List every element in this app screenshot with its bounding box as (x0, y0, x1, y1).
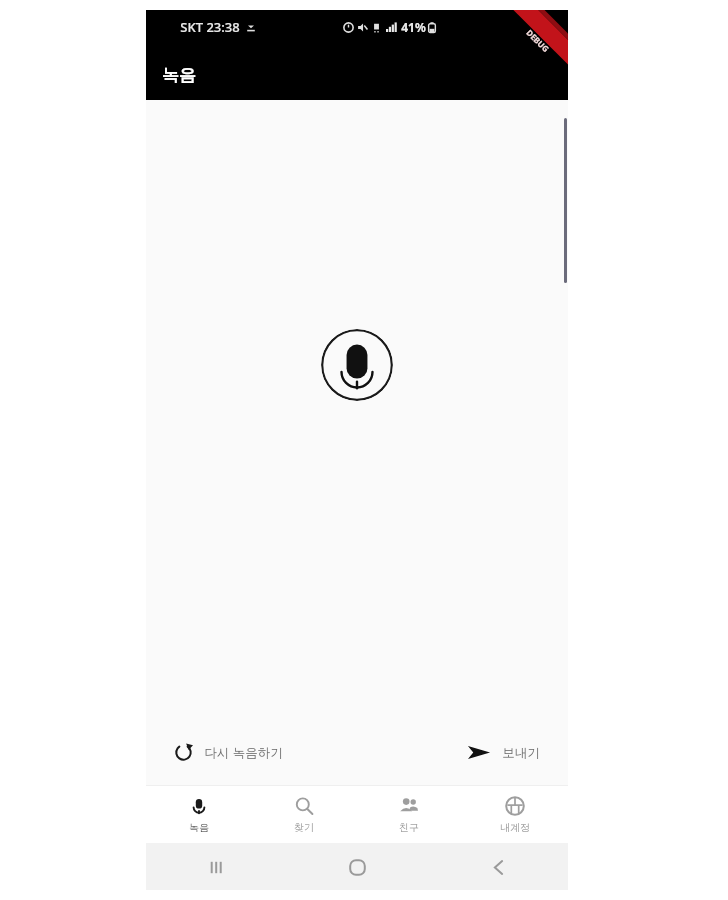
button[interactable]: Recents (196, 847, 236, 887)
button[interactable]: Record (321, 329, 393, 401)
button[interactable]: Home (337, 847, 377, 887)
staticText: 녹음 (189, 821, 209, 834)
staticText: 보내기 (502, 745, 540, 761)
staticText: 다시 녹음하기 (204, 744, 283, 761)
staticText: 내계정 (500, 821, 530, 834)
button[interactable]: 보내기 (461, 735, 546, 770)
button[interactable]: 다시 녹음하기 (168, 735, 289, 770)
button[interactable]: 찾기 (251, 786, 356, 843)
button[interactable]: 내계정 (462, 786, 568, 843)
staticText: 찾기 (294, 821, 314, 834)
staticText: 녹음 (162, 65, 196, 86)
staticText: DEBUG (524, 27, 552, 54)
button[interactable]: Back (478, 847, 518, 887)
button[interactable]: 친구 (356, 786, 462, 843)
button[interactable]: 녹음 (146, 786, 251, 843)
staticText: 친구 (399, 821, 419, 834)
staticText: SKT 23:38 (180, 18, 240, 36)
staticText: 41% (401, 19, 426, 35)
